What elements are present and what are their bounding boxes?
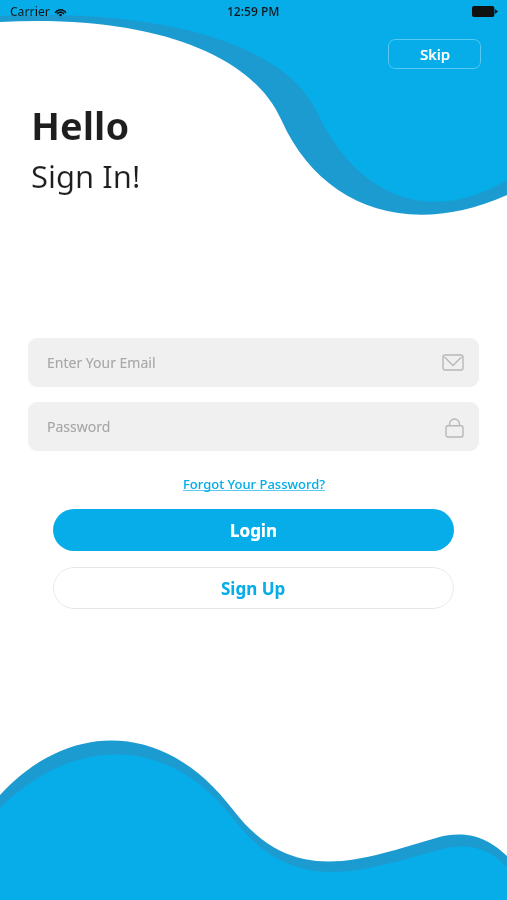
button[interactable]: Login [53,509,454,551]
button[interactable]: Enter Your Email [28,338,479,387]
staticText: Hello [31,99,130,151]
other: Email [443,355,463,370]
staticText: Sign Up [221,577,286,600]
staticText: Forgot Your Password? [183,475,325,493]
staticText: Carrier [10,3,50,19]
staticText: Sign In! [31,155,141,197]
button[interactable]: Skip [388,39,481,69]
button[interactable]: Password [28,402,479,451]
staticText: Skip [420,44,450,64]
staticText: Enter Your Email [47,353,443,372]
staticText: Login [230,519,278,542]
button[interactable]: Sign Up [53,567,454,609]
button[interactable]: Forgot Your Password? [179,473,329,495]
staticText: Password [47,417,446,436]
other: Password [446,417,463,437]
staticText: 12:59 PM [227,3,280,19]
